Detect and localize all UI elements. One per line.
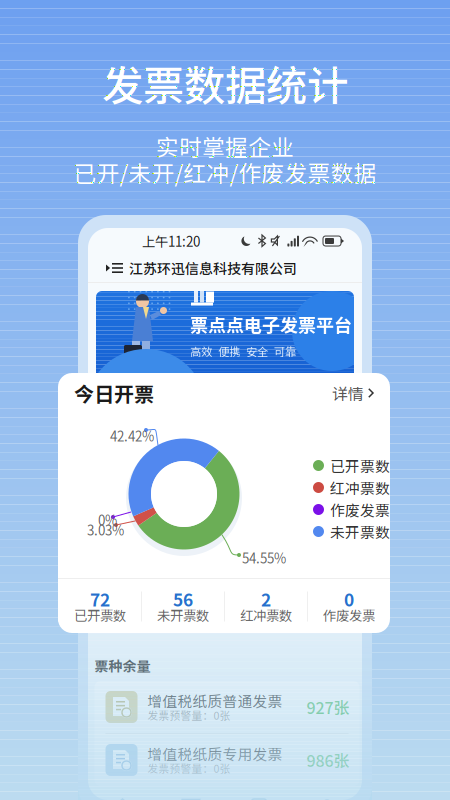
staticText: 今日开票 [104, 392, 184, 421]
staticText: 42.42% [110, 426, 154, 445]
button[interactable]: 详情 [332, 381, 374, 405]
staticText: 作废发票 [330, 499, 390, 520]
staticText: 实时掌握企业 [156, 130, 294, 162]
staticText: 红冲票数 [240, 605, 292, 625]
staticText: 发票预警量：0张 [147, 760, 230, 776]
button[interactable]: 记录 [225, 786, 293, 800]
staticText: 2 [261, 586, 271, 612]
staticText: 增值税纸质专用发票 [147, 743, 282, 764]
staticText: 红冲票数 [330, 477, 390, 498]
button[interactable]: 开票 [157, 786, 225, 800]
staticText: 3.03% [87, 520, 124, 539]
staticText: 发票数据统计 [102, 53, 348, 113]
staticText: 0% [98, 510, 117, 529]
button[interactable]: 增值税纸质普通发票 [94, 681, 359, 733]
staticText: 上午11:20 [142, 231, 200, 251]
staticText: 54.55% [242, 548, 286, 567]
staticText: 票种余量 [94, 655, 150, 676]
button[interactable]: 首页 [89, 786, 157, 800]
button[interactable]: 增值税纸质专用发票 [94, 734, 359, 786]
staticText: 已开票数 [74, 605, 126, 625]
staticText: 未开票数 [330, 521, 390, 542]
staticText: 56 [173, 586, 193, 612]
staticText: 详情 [332, 381, 364, 405]
button[interactable]: 我的 [293, 786, 361, 800]
staticText: 今日开票 [74, 378, 154, 407]
staticText: 详情 › [305, 395, 346, 419]
staticText: 0 [344, 586, 354, 612]
staticText: 未开票数 [157, 605, 209, 625]
staticText: 发票预警量：0张 [147, 707, 230, 723]
staticText: 增值税纸质普通发票 [147, 690, 282, 711]
staticText: 986张 [306, 748, 349, 772]
staticText: 高效 便携 安全 可靠 [190, 343, 296, 359]
staticText: 已开/未开/红冲/作废发票数据 [73, 156, 376, 188]
staticText: 作废发票 [323, 605, 375, 625]
staticText: 72 [90, 586, 110, 612]
staticText: 927张 [306, 695, 349, 719]
staticText: 江苏环迅信息科技有限公司 [129, 258, 297, 278]
button[interactable]: 江苏环迅信息科技有限公司 [88, 254, 362, 282]
staticText: 票点点电子发票平台 [190, 311, 352, 337]
staticText: 已开票数 [330, 455, 390, 476]
